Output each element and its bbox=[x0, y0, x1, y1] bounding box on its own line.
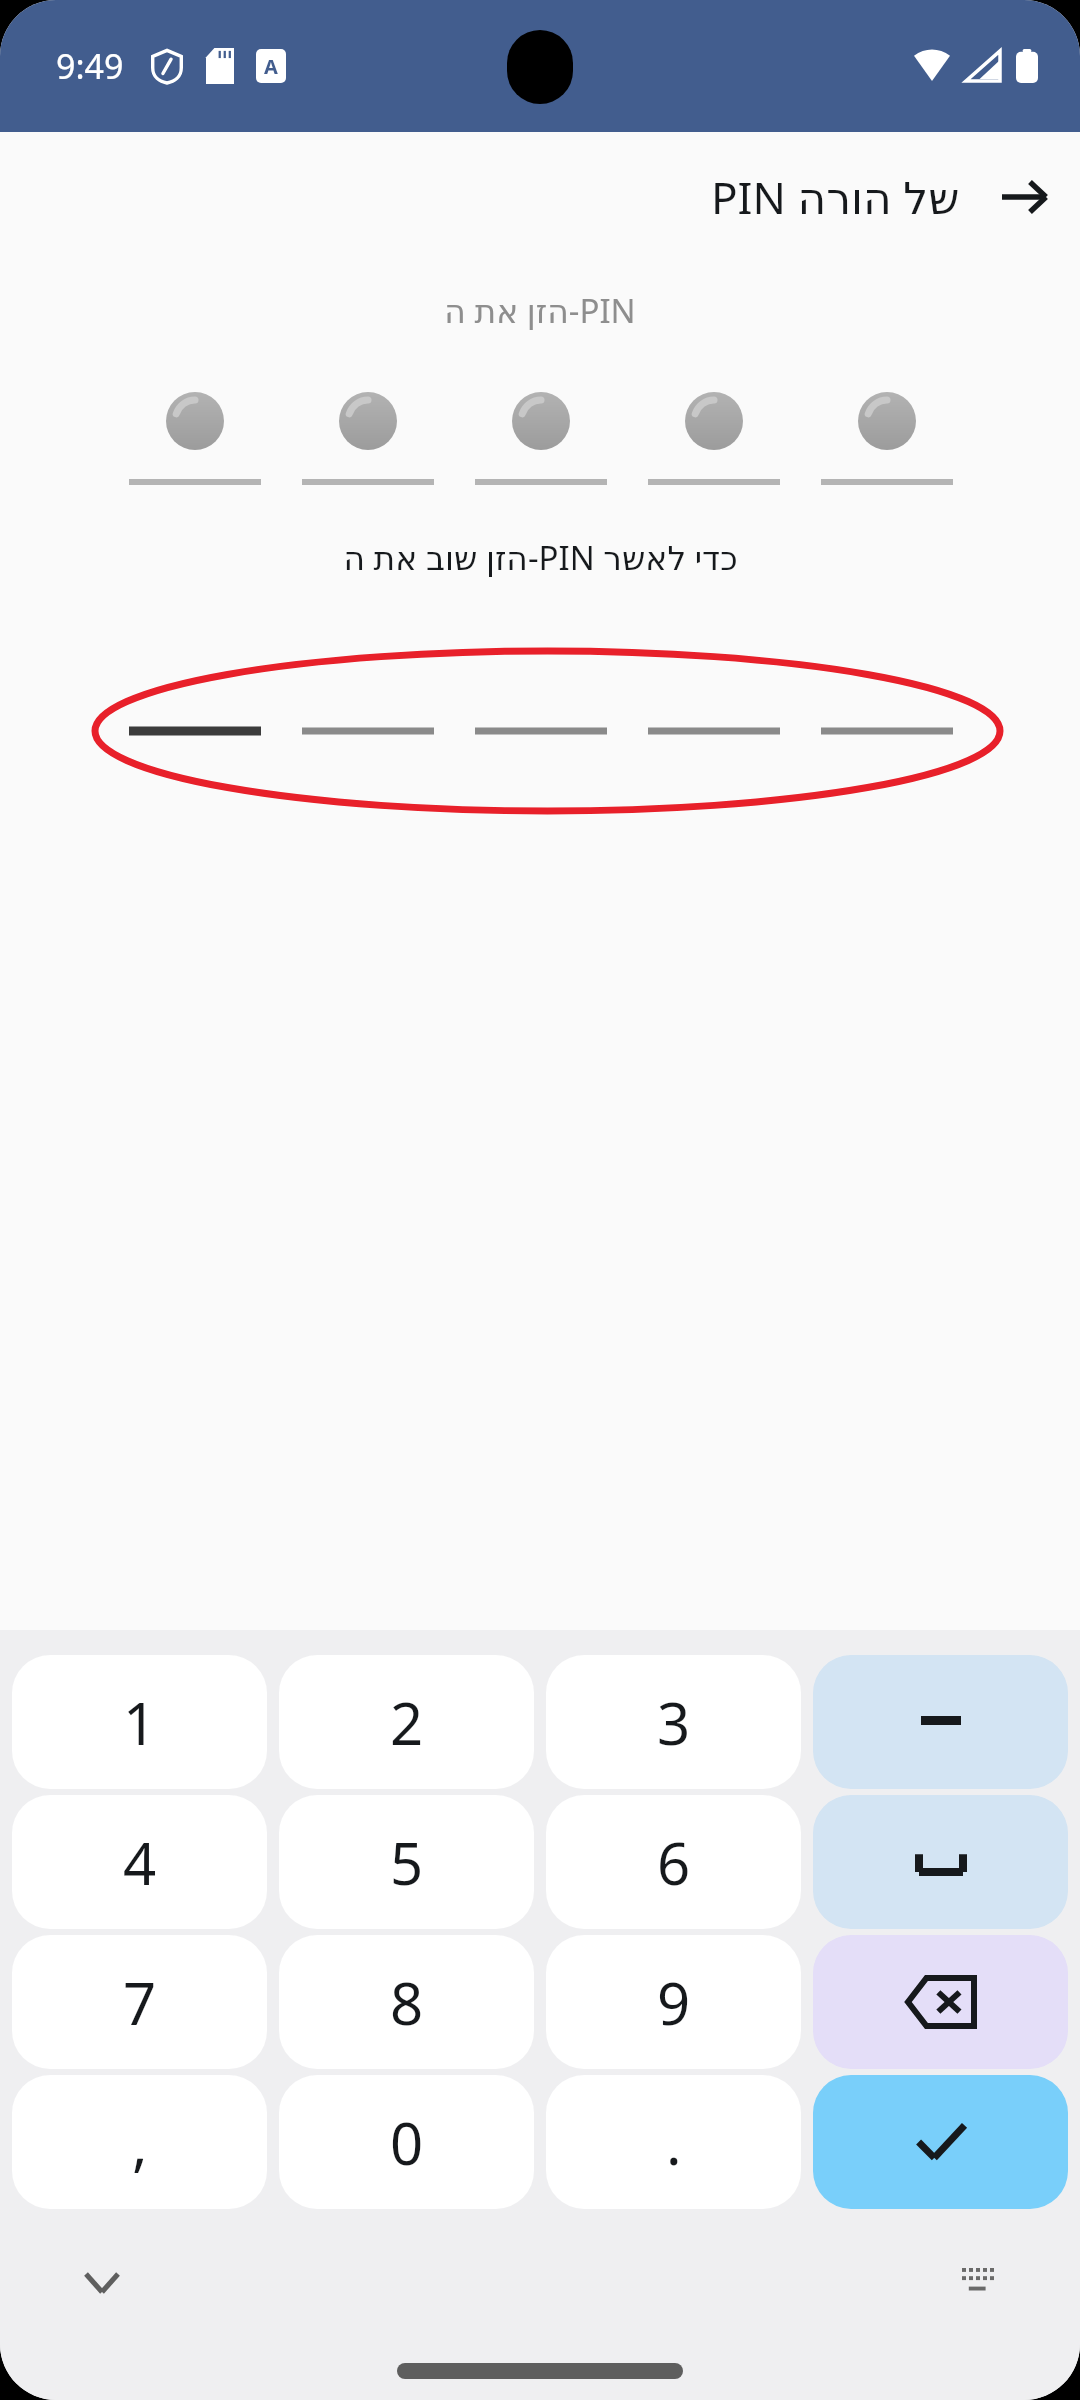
staticText: 2 bbox=[390, 1683, 424, 1762]
staticText: הזן את ה-PIN bbox=[444, 288, 636, 333]
button[interactable]: 8 bbox=[279, 1935, 534, 2069]
staticText: 9:49 bbox=[56, 43, 124, 89]
button[interactable]: Backspace bbox=[813, 1935, 1068, 2069]
button[interactable]: . bbox=[546, 2075, 801, 2209]
staticText: 0 bbox=[390, 2103, 424, 2182]
button[interactable]: Dash bbox=[813, 1655, 1068, 1789]
staticText: , bbox=[132, 2103, 148, 2182]
staticText: 3 bbox=[657, 1683, 691, 1762]
staticText: 4 bbox=[123, 1823, 157, 1902]
staticText: A bbox=[264, 53, 278, 80]
button[interactable]: Hide keyboard bbox=[72, 2253, 132, 2313]
staticText: PIN של הורה bbox=[711, 167, 960, 227]
staticText: 1 bbox=[123, 1683, 157, 1762]
staticText: 5 bbox=[390, 1823, 424, 1902]
button[interactable]: 5 bbox=[279, 1795, 534, 1929]
staticText: . bbox=[666, 2103, 682, 2182]
staticText: 6 bbox=[657, 1823, 691, 1902]
button[interactable]: Next bbox=[988, 161, 1060, 233]
button[interactable]: , bbox=[12, 2075, 267, 2209]
button[interactable]: 6 bbox=[546, 1795, 801, 1929]
staticText: 7 bbox=[123, 1963, 157, 2042]
staticText: 9 bbox=[657, 1963, 691, 2042]
button[interactable]: 7 bbox=[12, 1935, 267, 2069]
button[interactable]: Space bbox=[813, 1795, 1068, 1929]
button[interactable]: 4 bbox=[12, 1795, 267, 1929]
button[interactable]: Switch keyboard bbox=[952, 2253, 1012, 2313]
button[interactable]: 1 bbox=[12, 1655, 267, 1789]
button[interactable]: 3 bbox=[546, 1655, 801, 1789]
button[interactable]: 2 bbox=[279, 1655, 534, 1789]
button[interactable]: 0 bbox=[279, 2075, 534, 2209]
button[interactable]: Confirm bbox=[813, 2075, 1068, 2209]
staticText: 8 bbox=[390, 1963, 424, 2042]
button[interactable]: 9 bbox=[546, 1935, 801, 2069]
staticText: הזן שוב את ה-PIN כדי לאשר bbox=[343, 535, 738, 580]
